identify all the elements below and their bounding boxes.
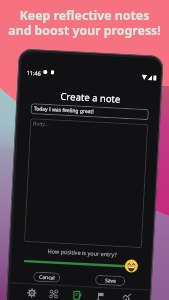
button[interactable]: Save bbox=[95, 275, 125, 286]
button[interactable]: Mood bbox=[124, 259, 138, 273]
button[interactable]: Cancel bbox=[33, 271, 60, 283]
staticText: 11:46 bbox=[26, 69, 42, 77]
button[interactable]: Body... bbox=[24, 118, 148, 248]
button[interactable]: Settings bbox=[23, 284, 40, 300]
staticText: Keep reflective notes and boost your pro… bbox=[0, 7, 169, 39]
button[interactable]: Habits bbox=[45, 285, 62, 300]
button[interactable]: Goals bbox=[92, 288, 109, 300]
staticText: Today I was feeling great! bbox=[34, 105, 94, 115]
button[interactable]: Today I was feeling great! bbox=[31, 103, 149, 120]
staticText: How positive is your entry? bbox=[47, 247, 118, 258]
staticText: Create a note bbox=[60, 90, 121, 106]
button[interactable]: Notes bbox=[69, 286, 86, 300]
staticText: Cancel bbox=[39, 274, 55, 282]
staticText: Save bbox=[105, 277, 116, 285]
staticText: Body... bbox=[33, 120, 49, 128]
button[interactable]: Stats bbox=[118, 289, 135, 300]
